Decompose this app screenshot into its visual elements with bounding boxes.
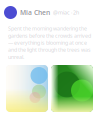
staticText: Mia Chen [20, 8, 50, 17]
button[interactable]: Photo of green leaves [51, 65, 93, 112]
button[interactable]: Profile photo [4, 6, 17, 19]
staticText: @miac · 2h [53, 9, 79, 16]
button[interactable]: Photo of the garden [6, 65, 48, 112]
staticText: Spent the morning wandering the gardens … [8, 25, 91, 60]
